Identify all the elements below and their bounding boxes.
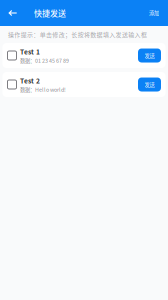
button[interactable]: 发送: [138, 48, 161, 62]
staticText: 发送: [144, 52, 154, 59]
button[interactable]: 发送: [138, 77, 161, 91]
staticText: 发送: [144, 81, 154, 88]
button[interactable]: Test 1: [2, 43, 165, 68]
staticText: 快捷发送: [34, 7, 66, 19]
button[interactable]: 添加: [149, 0, 168, 26]
staticText: 数据：01 23 45 67 89: [20, 56, 69, 64]
button[interactable]: Test 2: [2, 72, 165, 97]
staticText: Test 1: [20, 47, 40, 56]
staticText: 数据：Hello world!: [20, 85, 66, 93]
staticText: 添加: [149, 9, 159, 17]
staticText: 操作提示：单击修改；长按将数据填入发送输入框: [8, 30, 147, 39]
button[interactable]: Back: [0, 0, 25, 26]
staticText: Test 2: [20, 76, 40, 85]
